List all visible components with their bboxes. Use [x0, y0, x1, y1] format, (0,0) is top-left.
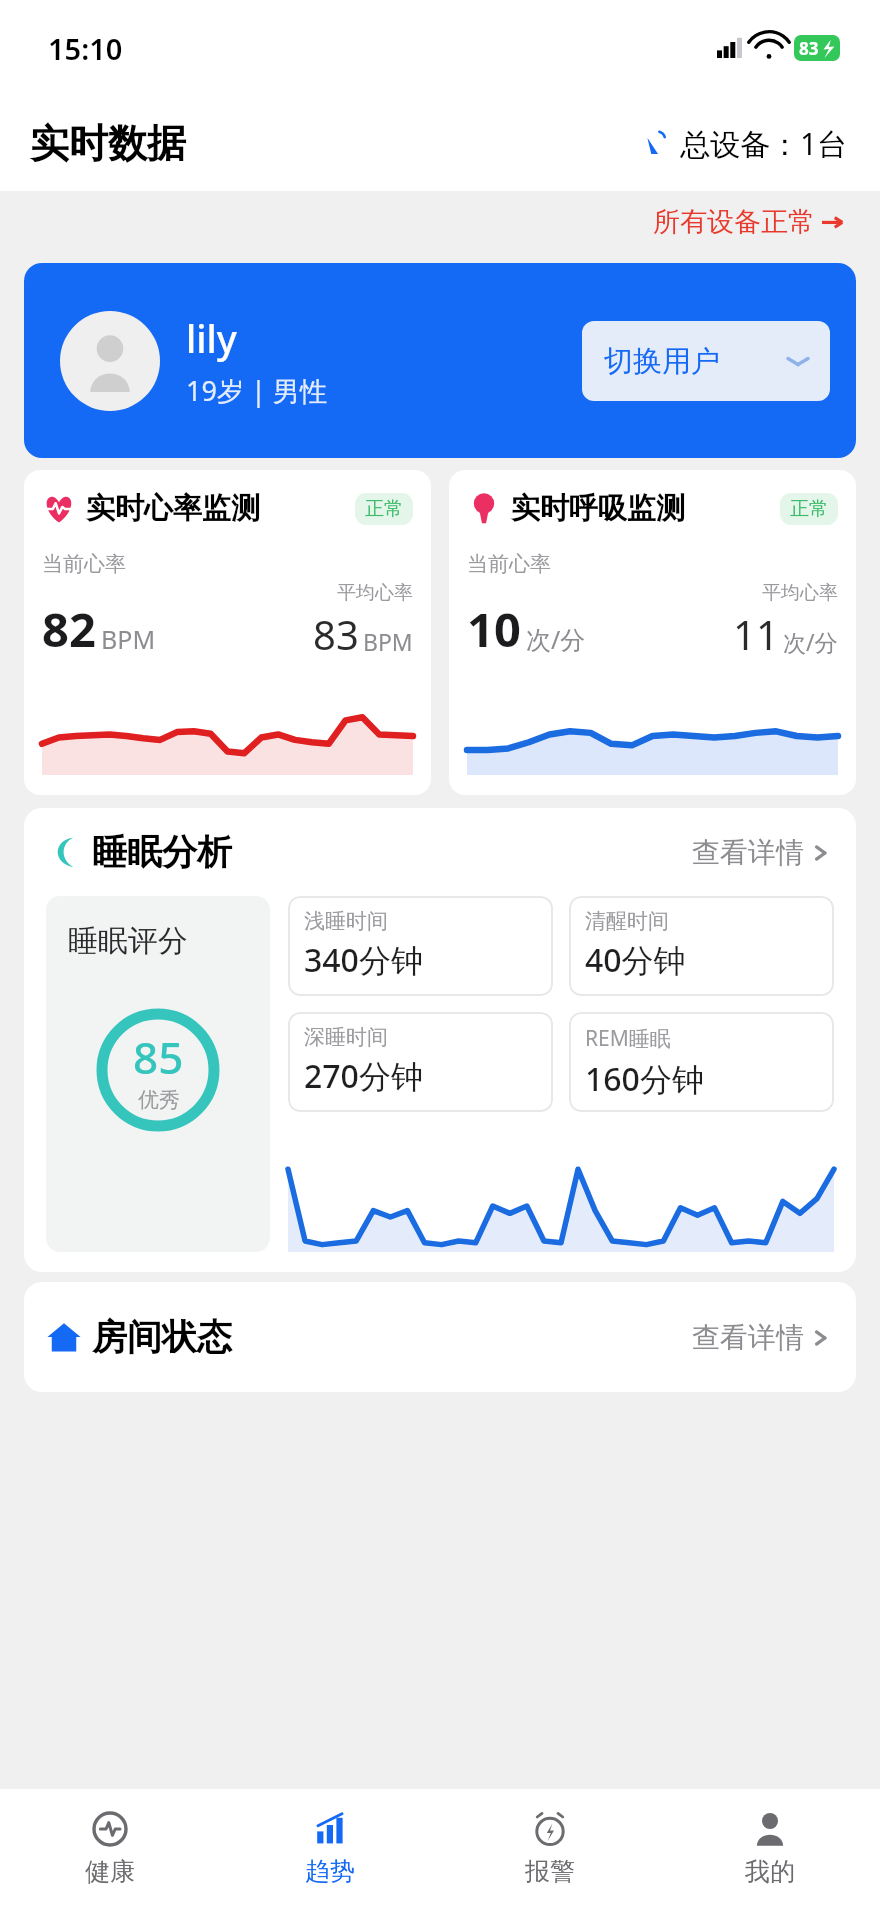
button[interactable]: 查看详情 [688, 1316, 834, 1359]
staticText: 正常 [365, 497, 403, 521]
staticText: 报警 [525, 1856, 575, 1887]
staticText: 15:10 [48, 29, 123, 68]
button[interactable]: 我的 [660, 1789, 880, 1907]
staticText: 340分钟 [304, 938, 423, 982]
staticText: 实时数据 [30, 119, 186, 168]
button[interactable]: 切换用户 [582, 321, 830, 401]
staticText: 优秀 [138, 1087, 180, 1113]
button[interactable]: 清醒时间 [569, 896, 834, 996]
button[interactable]: 房间状态 [24, 1282, 856, 1392]
staticText: 85 [133, 1027, 184, 1087]
staticText: BPM [363, 626, 413, 657]
staticText: 平均心率 [337, 581, 413, 605]
staticText: 当前心率 [467, 551, 551, 577]
button[interactable]: 查看详情 [688, 831, 834, 874]
button[interactable]: 报警 [440, 1789, 660, 1907]
staticText: 平均心率 [762, 581, 838, 605]
staticText: 次/分 [783, 626, 838, 657]
staticText: REM睡眠 [585, 1024, 671, 1053]
button[interactable]: 健康 [0, 1789, 220, 1907]
button[interactable]: 实时呼吸监测 [449, 470, 856, 795]
staticText: 房间状态 [92, 1315, 232, 1359]
staticText: 次/分 [526, 622, 586, 656]
staticText: BPM [101, 622, 156, 656]
staticText: 正常 [790, 497, 828, 521]
staticText: 当前心率 [42, 551, 126, 577]
staticText: 睡眠分析 [92, 830, 232, 874]
button[interactable]: REM睡眠 [569, 1012, 834, 1112]
staticText: 所有设备正常 [653, 205, 815, 239]
staticText: 健康 [85, 1856, 135, 1887]
staticText: 我的 [745, 1856, 795, 1887]
staticText: 睡眠评分 [68, 922, 188, 960]
staticText: 查看详情 [692, 1320, 804, 1355]
button[interactable]: 所有设备正常 [647, 199, 850, 245]
staticText: 浅睡时间 [304, 908, 388, 934]
staticText: 切换用户 [604, 343, 720, 380]
staticText: 40分钟 [585, 938, 686, 982]
staticText: 19岁 | 男性 [186, 372, 327, 409]
staticText: 查看详情 [692, 835, 804, 870]
staticText: 实时呼吸监测 [511, 490, 685, 527]
button[interactable]: 总设备：1台 [644, 123, 848, 164]
staticText: 总设备：1台 [680, 123, 848, 164]
staticText: 83 [799, 37, 819, 60]
staticText: 270分钟 [304, 1054, 423, 1098]
staticText: 清醒时间 [585, 908, 669, 934]
button[interactable]: 浅睡时间 [288, 896, 553, 996]
staticText: 趋势 [305, 1856, 355, 1887]
staticText: 10 [467, 597, 521, 661]
staticText: 实时心率监测 [86, 490, 260, 527]
staticText: 11 [733, 607, 779, 661]
button[interactable]: 趋势 [220, 1789, 440, 1907]
staticText: 83 [313, 607, 359, 661]
button[interactable]: lily [24, 263, 856, 458]
staticText: 160分钟 [585, 1057, 704, 1101]
staticText: lily [186, 312, 237, 364]
button[interactable]: 实时心率监测 [24, 470, 431, 795]
staticText: 深睡时间 [304, 1024, 388, 1050]
staticText: 82 [42, 597, 96, 661]
button[interactable]: 深睡时间 [288, 1012, 553, 1112]
